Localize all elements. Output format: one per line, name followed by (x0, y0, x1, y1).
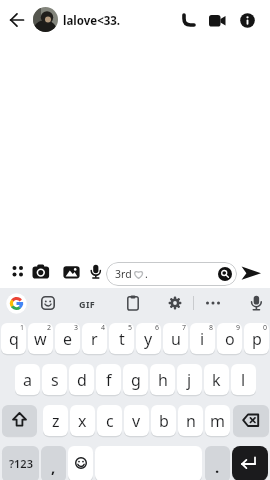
staticText: k (212, 369, 221, 391)
staticText: o (225, 328, 235, 350)
staticText: p (252, 328, 262, 350)
staticText: r (91, 328, 98, 350)
staticText: 2 (47, 323, 52, 333)
staticText: i (200, 328, 205, 350)
staticText: e (63, 328, 73, 350)
staticText: , (51, 457, 56, 477)
staticText: GIF (79, 298, 96, 310)
staticText: 7 (182, 323, 187, 333)
staticText: g (131, 369, 141, 391)
staticText: l (241, 369, 246, 391)
staticText: 1 (20, 323, 25, 333)
staticText: t (119, 328, 125, 350)
staticText: v (132, 410, 141, 432)
staticText: b (159, 410, 169, 432)
staticText: 9 (236, 323, 241, 333)
staticText: 5 (128, 323, 133, 333)
staticText: j (187, 369, 192, 391)
staticText: ?123 (9, 456, 33, 471)
staticText: lalove<33. (63, 13, 121, 29)
staticText: 3rd (115, 267, 132, 281)
staticText: x (78, 410, 87, 432)
staticText: 4 (101, 323, 106, 333)
staticText: d (77, 369, 87, 391)
staticText: 3 (74, 323, 79, 333)
staticText: y (144, 328, 153, 350)
staticText: 8 (209, 323, 214, 333)
staticText: h (158, 369, 168, 391)
staticText: a (23, 369, 32, 391)
staticText: 0 (263, 323, 268, 333)
staticText: u (171, 328, 181, 350)
staticText: q (9, 328, 19, 350)
staticText: . (215, 457, 220, 477)
staticText: w (34, 328, 47, 350)
staticText: n (186, 410, 196, 432)
staticText: s (51, 369, 59, 391)
staticText: z (52, 410, 60, 432)
staticText: 6 (155, 323, 160, 333)
staticText: m (210, 410, 225, 432)
staticText: c (106, 410, 114, 432)
staticText: . (145, 267, 148, 281)
staticText: f (106, 369, 112, 391)
